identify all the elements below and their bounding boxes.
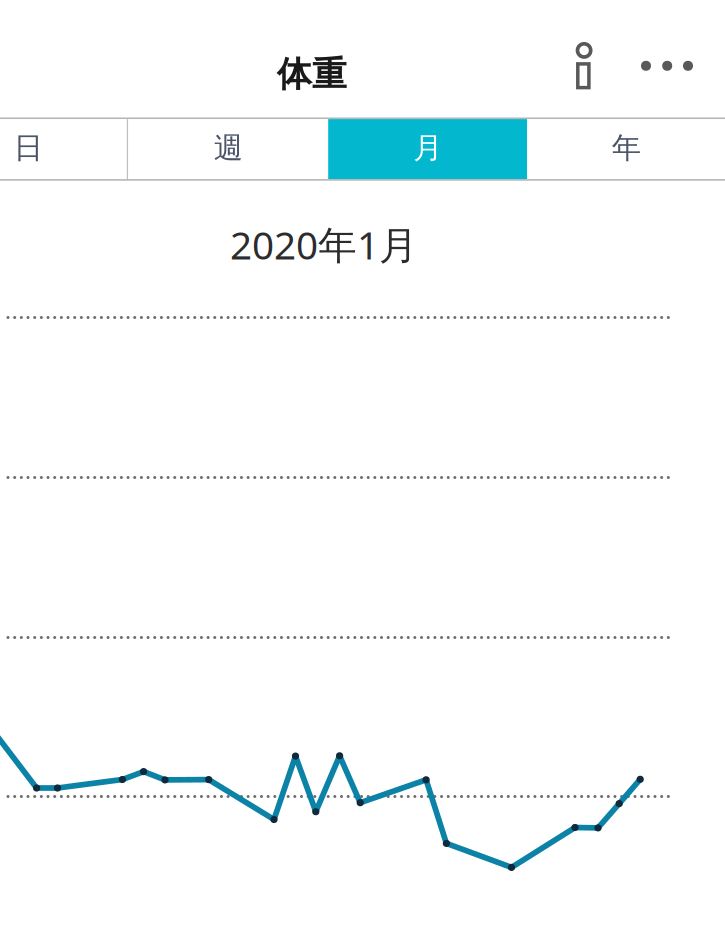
staticText: 体重 [277,53,347,96]
button[interactable]: 日 [0,119,127,179]
staticText: 月 [413,130,442,166]
staticText: 日 [14,130,43,166]
staticText: 2020年1月 [230,219,418,270]
button[interactable]: 週 [128,119,328,179]
button[interactable]: 月 [328,119,527,179]
button[interactable]: Profile [564,26,620,92]
staticText: 週 [214,130,243,166]
staticText: 年 [612,130,641,166]
button[interactable]: More options [632,31,700,87]
button[interactable]: 年 [527,119,725,179]
